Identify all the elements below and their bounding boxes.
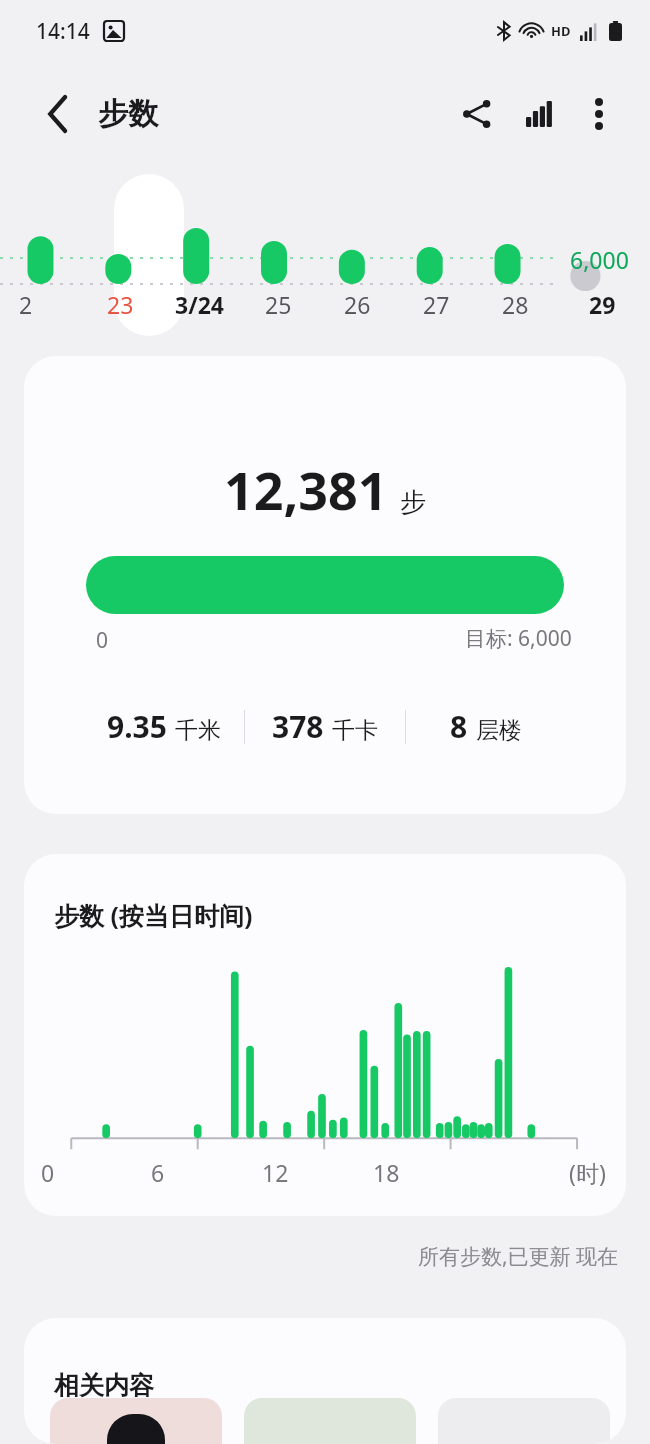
staticText: 14:14 [36, 17, 90, 46]
staticText: 378 [272, 706, 324, 747]
staticText: HD [551, 22, 571, 40]
staticText: 12 [262, 1157, 289, 1188]
staticText: 26 [344, 289, 371, 320]
button[interactable]: Back [30, 85, 88, 143]
button[interactable] [114, 174, 184, 336]
staticText: 23 [107, 289, 134, 320]
button[interactable] [244, 1398, 416, 1444]
staticText: 3/24 [175, 289, 225, 320]
button[interactable]: 8 [406, 706, 566, 747]
staticText: 层楼 [476, 716, 522, 745]
button[interactable]: 12,381 [24, 356, 626, 814]
staticText: 目标: 6,000 [465, 624, 572, 653]
staticText: 9.35 [107, 706, 167, 747]
staticText: (时) [569, 1157, 606, 1188]
staticText: 27 [423, 289, 450, 320]
staticText: 6 [151, 1157, 165, 1188]
button[interactable]: Chart [508, 83, 570, 145]
button[interactable]: Share [446, 83, 508, 145]
staticText: 所有步数,已更新 现在 [417, 1242, 618, 1271]
staticText: 18 [373, 1157, 400, 1188]
staticText: 6,000 [570, 244, 629, 275]
staticText: 相关内容 [54, 1370, 154, 1401]
button[interactable]: 步数 (按当日时间) [24, 854, 626, 1216]
staticText: 8 [450, 706, 468, 747]
staticText: 0 [41, 1157, 55, 1188]
staticText: 28 [502, 289, 529, 320]
button[interactable]: More options [570, 85, 628, 143]
staticText: 步 [400, 486, 426, 519]
button[interactable] [50, 1398, 222, 1444]
staticText: 步数 (按当日时间) [54, 898, 253, 932]
staticText: 0 [96, 626, 109, 655]
button[interactable]: 378 [245, 706, 405, 747]
staticText: 千米 [175, 716, 221, 745]
staticText: 29 [589, 289, 616, 320]
staticText: 千卡 [332, 716, 378, 745]
button[interactable]: 相关内容 [24, 1318, 626, 1444]
staticText: 25 [265, 289, 292, 320]
staticText: 12,381 [224, 454, 388, 525]
button[interactable]: 9.35 [84, 706, 244, 747]
staticText: 步数 [98, 95, 158, 133]
staticText: 2 [19, 289, 33, 320]
